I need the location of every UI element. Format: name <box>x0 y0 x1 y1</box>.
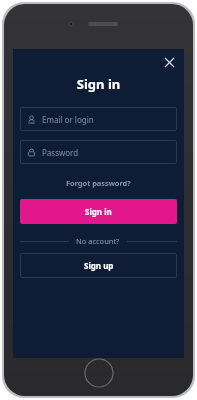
staticText: No account? <box>76 236 120 246</box>
staticText: Sign in <box>85 206 112 217</box>
button[interactable]: Forgot password? <box>13 174 184 192</box>
button[interactable]: Sign up <box>20 253 177 278</box>
staticText: Sign up <box>84 260 114 271</box>
button[interactable]: Password <box>20 140 177 164</box>
button[interactable]: Home <box>84 358 114 388</box>
staticText: Forgot password? <box>66 178 131 188</box>
button[interactable]: Close <box>160 53 178 71</box>
staticText: Sign in <box>13 75 184 93</box>
button[interactable]: Sign in <box>20 199 177 224</box>
staticText: Password <box>42 147 79 158</box>
staticText: Email or login <box>42 114 94 125</box>
button[interactable]: Email or login <box>20 107 177 131</box>
